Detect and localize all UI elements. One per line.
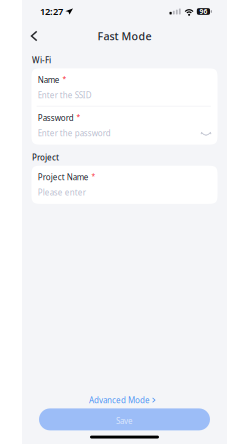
staticText: 12:27 (40, 5, 63, 18)
button[interactable]: Back (22, 26, 47, 46)
button[interactable]: Save (39, 408, 210, 430)
staticText: Fast Mode (97, 29, 151, 43)
staticText: Name (38, 75, 60, 85)
staticText: Enter the password (38, 128, 111, 138)
staticText: Wi-Fi (32, 55, 51, 65)
staticText: * (91, 171, 95, 180)
button[interactable]: Advanced Mode (81, 388, 168, 405)
staticText: * (76, 112, 80, 121)
staticText: Please enter (38, 187, 86, 198)
staticText: * (62, 74, 66, 83)
staticText: Save (116, 416, 133, 426)
staticText: Project Name (38, 172, 89, 182)
button[interactable]: Show password (199, 129, 211, 137)
staticText: Enter the SSID (38, 90, 92, 100)
staticText: 96 (199, 7, 207, 16)
staticText: Advanced Mode (89, 395, 150, 405)
staticText: Password (38, 113, 74, 123)
staticText: Project (32, 152, 59, 163)
